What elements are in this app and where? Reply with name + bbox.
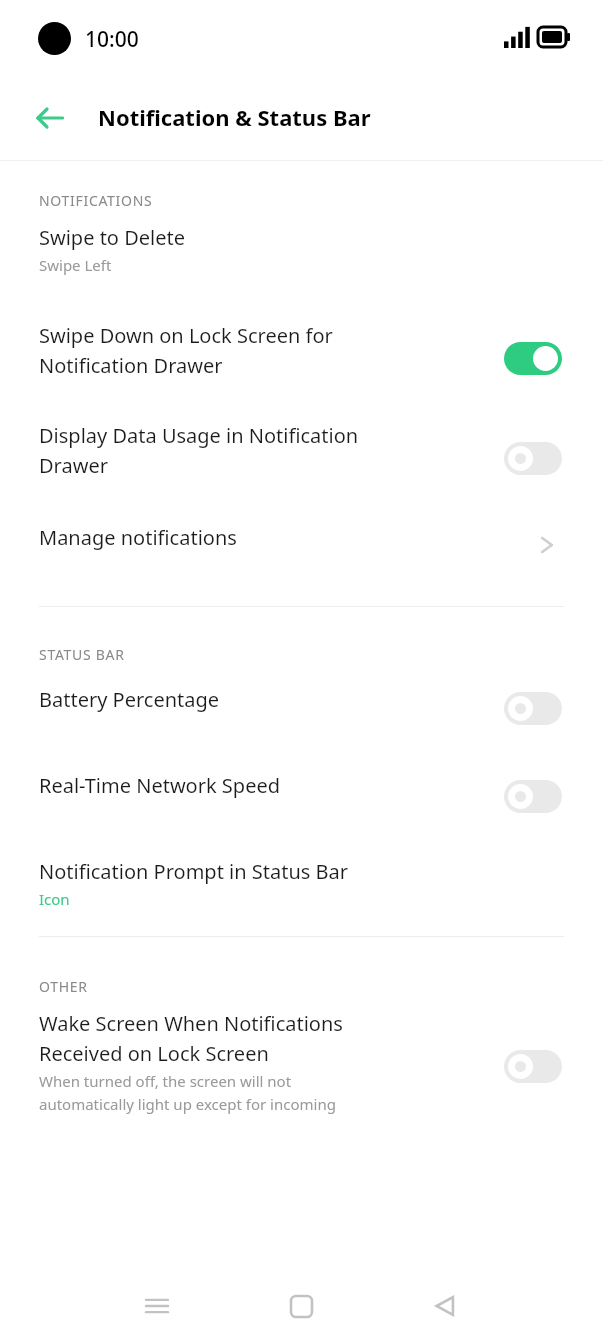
staticText: Swipe to Delete [39,224,185,251]
button[interactable]: Toggle off [504,692,562,725]
button[interactable]: Recents [133,1282,181,1330]
staticText: Notification Prompt in Status Bar [39,858,349,885]
staticText: Wake Screen When Notifications Received … [39,1010,343,1067]
staticText: NOTIFICATIONS [39,191,153,210]
staticText: Real-Time Network Speed [39,772,280,799]
staticText: Icon [39,889,70,909]
staticText: STATUS BAR [39,645,125,664]
button[interactable]: Manage notifications [0,508,603,582]
button[interactable]: Display Data Usage in Notification Drawe… [0,408,603,508]
button[interactable]: Notification Prompt in Status Bar [0,840,603,932]
staticText: Display Data Usage in Notification Drawe… [39,422,359,479]
staticText: Battery Percentage [39,686,220,713]
button[interactable]: Toggle on [504,342,562,375]
staticText: Swipe Down on Lock Screen for Notificati… [39,322,333,379]
button[interactable]: Toggle off [504,1050,562,1083]
button[interactable]: Wake Screen When Notifications Received … [0,996,603,1136]
button[interactable]: Swipe Down on Lock Screen for Notificati… [0,308,603,408]
button[interactable]: Real-Time Network Speed [0,752,603,840]
staticText: Manage notifications [39,524,237,551]
button[interactable]: Battery Percentage [0,664,603,752]
staticText: OTHER [39,977,88,996]
staticText: Swipe Left [39,255,112,275]
staticText: 10:00 [85,25,139,54]
button[interactable]: Back [421,1282,469,1330]
other: Open [532,530,562,560]
staticText: When turned off, the screen will not aut… [39,1071,336,1114]
button[interactable]: Home [277,1282,325,1330]
button[interactable]: Back [26,94,74,142]
button[interactable]: Toggle off [504,780,562,813]
staticText: Notification & Status Bar [98,102,371,132]
button[interactable]: Swipe to Delete [0,210,603,308]
button[interactable]: Toggle off [504,442,562,475]
